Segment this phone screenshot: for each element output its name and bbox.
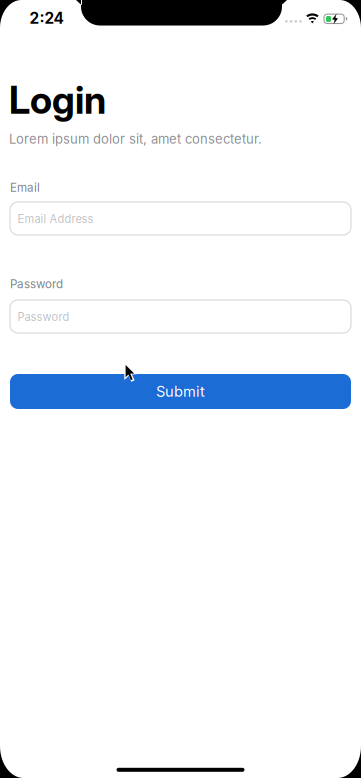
staticText: Lorem ipsum dolor sit, amet consectetur. [9, 131, 262, 147]
textField[interactable] [10, 202, 351, 235]
staticText: Password [17, 310, 69, 324]
staticText: Submit [156, 383, 205, 400]
staticText: Email Address [17, 212, 93, 226]
textField[interactable] [10, 300, 351, 333]
staticText: Login [9, 77, 106, 123]
staticText: 2:24 [29, 9, 63, 28]
staticText: Password [10, 277, 63, 291]
button[interactable]: Submit [10, 374, 351, 409]
staticText: Email [10, 180, 40, 194]
